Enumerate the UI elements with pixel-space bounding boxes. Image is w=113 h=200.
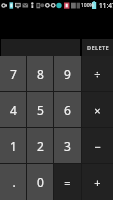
button[interactable]: 8 [27, 56, 54, 92]
staticText: . [12, 174, 16, 190]
button[interactable]: 4 [0, 92, 27, 128]
button[interactable]: DELETE [82, 39, 113, 56]
button[interactable]: 6 [54, 92, 81, 128]
button[interactable]: 2 [27, 128, 54, 164]
staticText: 4 [10, 102, 17, 118]
staticText: 2 [37, 138, 44, 154]
staticText: − [94, 139, 101, 154]
button[interactable]: 7 [0, 56, 27, 92]
staticText: ÷ [94, 67, 101, 82]
staticText: 5 [37, 102, 44, 118]
button[interactable]: = [54, 164, 81, 200]
staticText: 3 [64, 138, 71, 154]
staticText: × [94, 103, 101, 118]
staticText: = [64, 175, 71, 190]
button[interactable]: 3 [54, 128, 81, 164]
button[interactable]: 9 [54, 56, 81, 92]
staticText: 11:47 [99, 1, 113, 10]
button[interactable]: + [81, 164, 113, 200]
staticText: 6 [64, 102, 71, 118]
button[interactable]: 1 [0, 128, 27, 164]
button[interactable]: ÷ [81, 56, 113, 92]
button[interactable]: 0 [27, 164, 54, 200]
staticText: 9 [64, 66, 71, 82]
staticText: 8 [37, 66, 44, 82]
button[interactable]: − [81, 128, 113, 164]
staticText: 0 [37, 174, 44, 190]
button[interactable]: . [0, 164, 27, 200]
button[interactable]: 5 [27, 92, 54, 128]
staticText: + [94, 175, 101, 190]
staticText: 1 [10, 138, 17, 154]
staticText: 7 [10, 66, 17, 82]
button[interactable]: × [81, 92, 113, 128]
staticText: DELETE [87, 44, 109, 52]
staticText: 100% [81, 2, 94, 9]
